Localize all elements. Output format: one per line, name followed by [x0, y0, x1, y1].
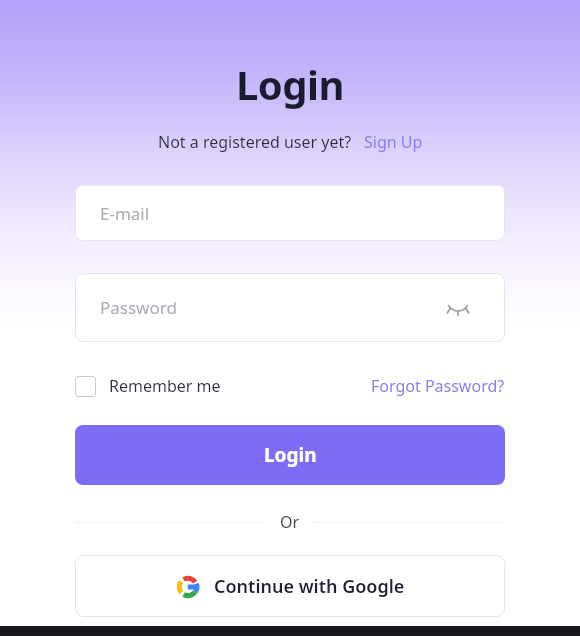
staticText: E-mail	[100, 202, 150, 225]
staticText: Continue with Google	[214, 574, 405, 599]
staticText: Password	[100, 296, 177, 319]
staticText: Remember me	[109, 375, 221, 397]
button[interactable]: Sign Up	[364, 131, 423, 153]
button[interactable]: Show password	[444, 294, 472, 322]
staticText: Not a registered user yet?	[158, 131, 352, 153]
button[interactable]: Continue with Google	[75, 555, 505, 617]
button[interactable]: Remember me	[75, 375, 221, 397]
button[interactable]: E-mail	[75, 185, 505, 241]
staticText: Or	[280, 511, 300, 533]
button[interactable]: Login	[75, 425, 505, 485]
button[interactable]: Forgot Password?	[371, 375, 505, 397]
staticText: Login	[0, 57, 580, 111]
button[interactable]: Password	[75, 273, 505, 342]
staticText: Forgot Password?	[371, 375, 505, 397]
staticText: Login	[264, 442, 317, 468]
staticText: Sign Up	[364, 131, 423, 153]
